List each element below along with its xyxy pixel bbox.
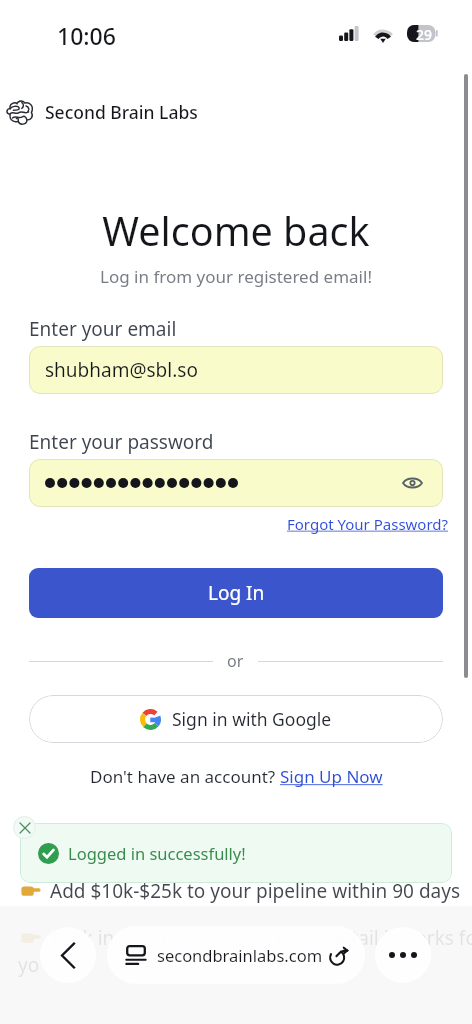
staticText: Log in from your registered email! [0,265,472,288]
staticText: Don't have an account? [90,765,280,788]
staticText: yo [18,952,40,978]
staticText: Second Brain Labs [45,100,198,124]
staticText: Enter your email [29,316,177,342]
button[interactable]: More [375,927,431,983]
button[interactable]: shubham@sbl.so [29,346,443,394]
button[interactable]: Log In [29,568,443,618]
button[interactable]: Sign Up Now [280,765,383,788]
button[interactable]: Forgot Your Password? [287,514,449,534]
staticText: $70k in new pipeline • 10 FREE, detail i… [50,925,472,951]
button[interactable]: Close [13,816,36,839]
button[interactable]: Sign in with Google [29,695,443,743]
staticText: Forgot Your Password? [287,514,449,534]
staticText: Enter your password [29,429,214,455]
button[interactable]: Page settings [107,926,365,984]
staticText: Log In [208,580,265,606]
staticText: 10:06 [57,20,116,51]
button[interactable]: Show password [29,459,443,507]
staticText: Add $10k-$25k to your pipeline within 90… [50,878,461,904]
staticText: Welcome back [0,204,472,258]
staticText: or [227,650,244,672]
button[interactable]: Show password [397,468,427,498]
staticText: secondbrainlabs.com [157,944,323,966]
staticText: 29 [416,25,433,42]
staticText: Sign Up Now [280,765,383,788]
button[interactable]: Reload [324,941,352,969]
button[interactable]: Back [40,927,96,983]
button[interactable]: Page settings [122,941,150,969]
staticText: Sign in with Google [172,707,332,731]
staticText: Logged in successfully! [68,842,246,864]
staticText: shubham@sbl.so [45,357,198,383]
